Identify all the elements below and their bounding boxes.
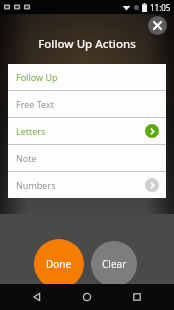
staticText: Numbers	[16, 179, 56, 191]
button[interactable]: Done	[34, 239, 84, 289]
button[interactable]: Numbers	[8, 172, 166, 198]
button[interactable]: Note	[8, 145, 166, 171]
button[interactable]: Close	[148, 16, 167, 35]
button[interactable]: Recent apps	[124, 284, 150, 310]
staticText: Free Text	[16, 98, 54, 110]
button[interactable]: Back	[24, 284, 50, 310]
staticText: Clear	[102, 257, 127, 271]
button[interactable]: Letters	[8, 118, 166, 144]
button[interactable]: Free Text	[8, 91, 166, 117]
staticText: Done	[46, 257, 72, 271]
staticText: Follow Up Actions	[0, 36, 174, 52]
button[interactable]: Follow Up	[8, 64, 166, 90]
staticText: Letters	[16, 125, 46, 137]
staticText: Follow Up	[16, 71, 58, 83]
staticText: Note	[16, 152, 37, 164]
button[interactable]: Clear	[91, 241, 137, 287]
button[interactable]: Home	[74, 284, 100, 310]
staticText: 11:05	[150, 2, 171, 13]
